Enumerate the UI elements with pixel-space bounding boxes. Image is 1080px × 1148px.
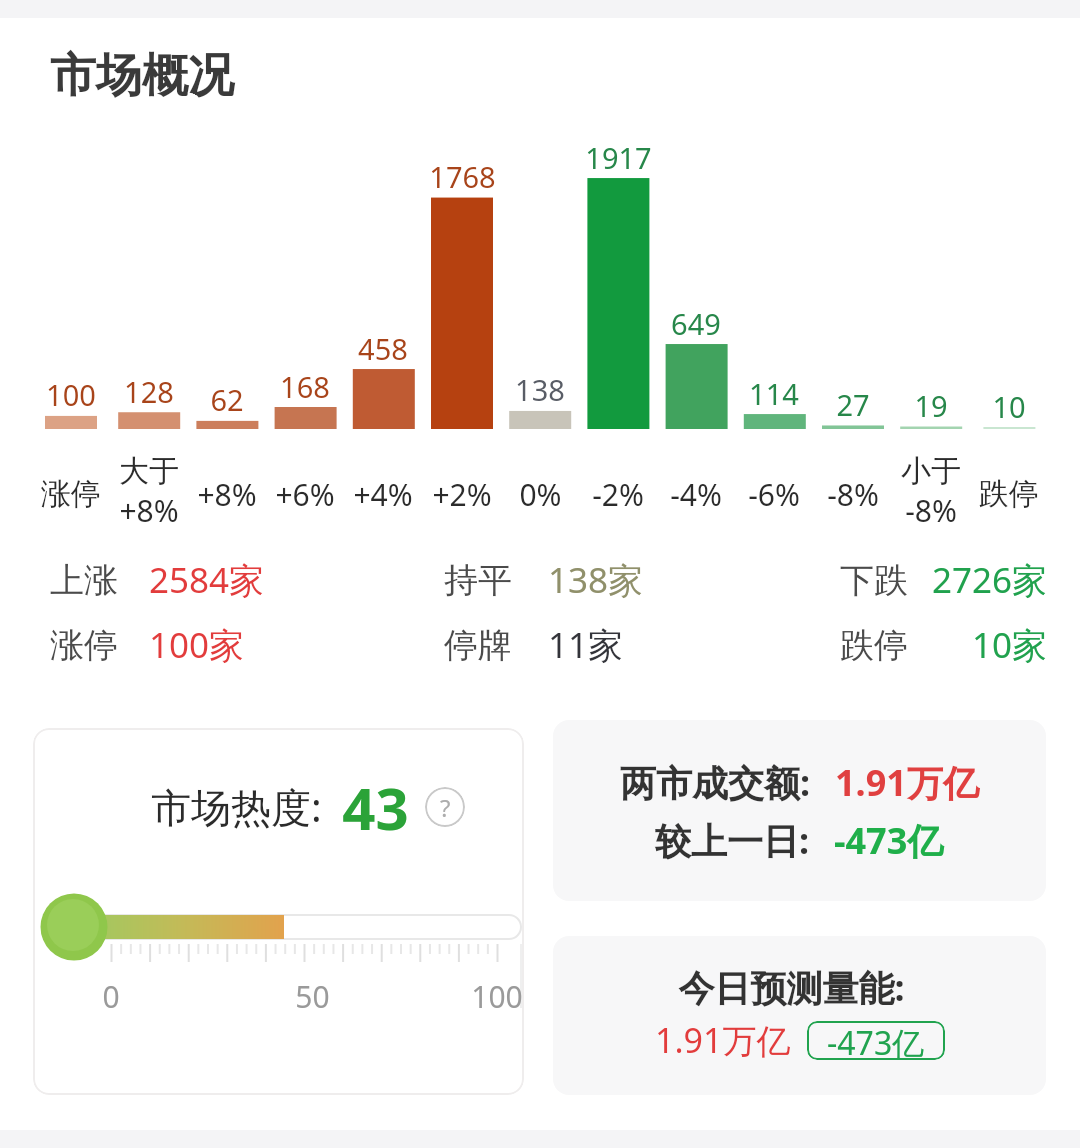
staticText: +8% (197, 474, 257, 515)
staticText: 下跌 (840, 559, 908, 602)
staticText: -4% (670, 474, 722, 515)
staticText: 0% (519, 474, 562, 515)
staticText: 1.91万亿 (655, 1017, 791, 1063)
staticText: 持平 (444, 559, 512, 602)
staticText: -6% (748, 474, 800, 515)
staticText: 10家 (972, 621, 1048, 669)
staticText: -2% (592, 474, 644, 515)
button[interactable] (553, 936, 1046, 1095)
staticText: 两市成交额: (620, 758, 811, 807)
staticText: 114 (749, 374, 799, 413)
button[interactable]: ? (425, 787, 465, 827)
staticText: 27 (836, 385, 870, 424)
staticText: ? (440, 791, 451, 824)
staticText: 100 (46, 375, 96, 414)
staticText: +2% (432, 474, 492, 515)
staticText: 100家 (149, 621, 245, 669)
staticText: 停牌 (444, 624, 512, 667)
staticText: 小于 -8% (901, 452, 961, 530)
staticText: 大于 +8% (119, 452, 179, 530)
staticText: 2584家 (149, 556, 265, 604)
staticText: 0 (102, 976, 120, 1017)
staticText: 市场热度: (151, 779, 322, 834)
button[interactable] (33, 728, 524, 1095)
staticText: 较上一日: (655, 816, 810, 865)
button[interactable] (553, 720, 1046, 901)
staticText: 138 (515, 370, 565, 409)
staticText: 跌停 (840, 624, 908, 667)
staticText: 11家 (548, 621, 624, 669)
staticText: 138家 (548, 556, 644, 604)
staticText: +4% (353, 474, 413, 515)
staticText: 50 (295, 976, 330, 1017)
staticText: 100 (471, 976, 523, 1017)
staticText: 涨停 (41, 475, 101, 513)
staticText: 19 (914, 386, 948, 425)
staticText: 62 (210, 380, 244, 419)
staticText: 今日预测量能: (678, 963, 905, 1012)
staticText: 128 (124, 372, 174, 411)
button[interactable]: -473亿 (807, 1021, 945, 1060)
staticText: 跌停 (979, 475, 1039, 513)
staticText: 168 (280, 367, 330, 406)
staticText: -8% (827, 474, 879, 515)
staticText: -473亿 (834, 816, 944, 865)
staticText: 市场概况 (50, 47, 234, 105)
staticText: -473亿 (827, 1021, 925, 1060)
staticText: 1768 (429, 157, 496, 196)
staticText: 2726家 (932, 556, 1048, 604)
staticText: 上涨 (50, 559, 118, 602)
staticText: 涨停 (50, 624, 118, 667)
staticText: 458 (358, 329, 408, 368)
staticText: +6% (275, 474, 335, 515)
staticText: 43 (342, 768, 409, 847)
staticText: 10 (992, 387, 1026, 426)
staticText: 1.91万亿 (835, 758, 979, 807)
staticText: 1917 (585, 138, 652, 177)
staticText: 649 (671, 304, 721, 343)
